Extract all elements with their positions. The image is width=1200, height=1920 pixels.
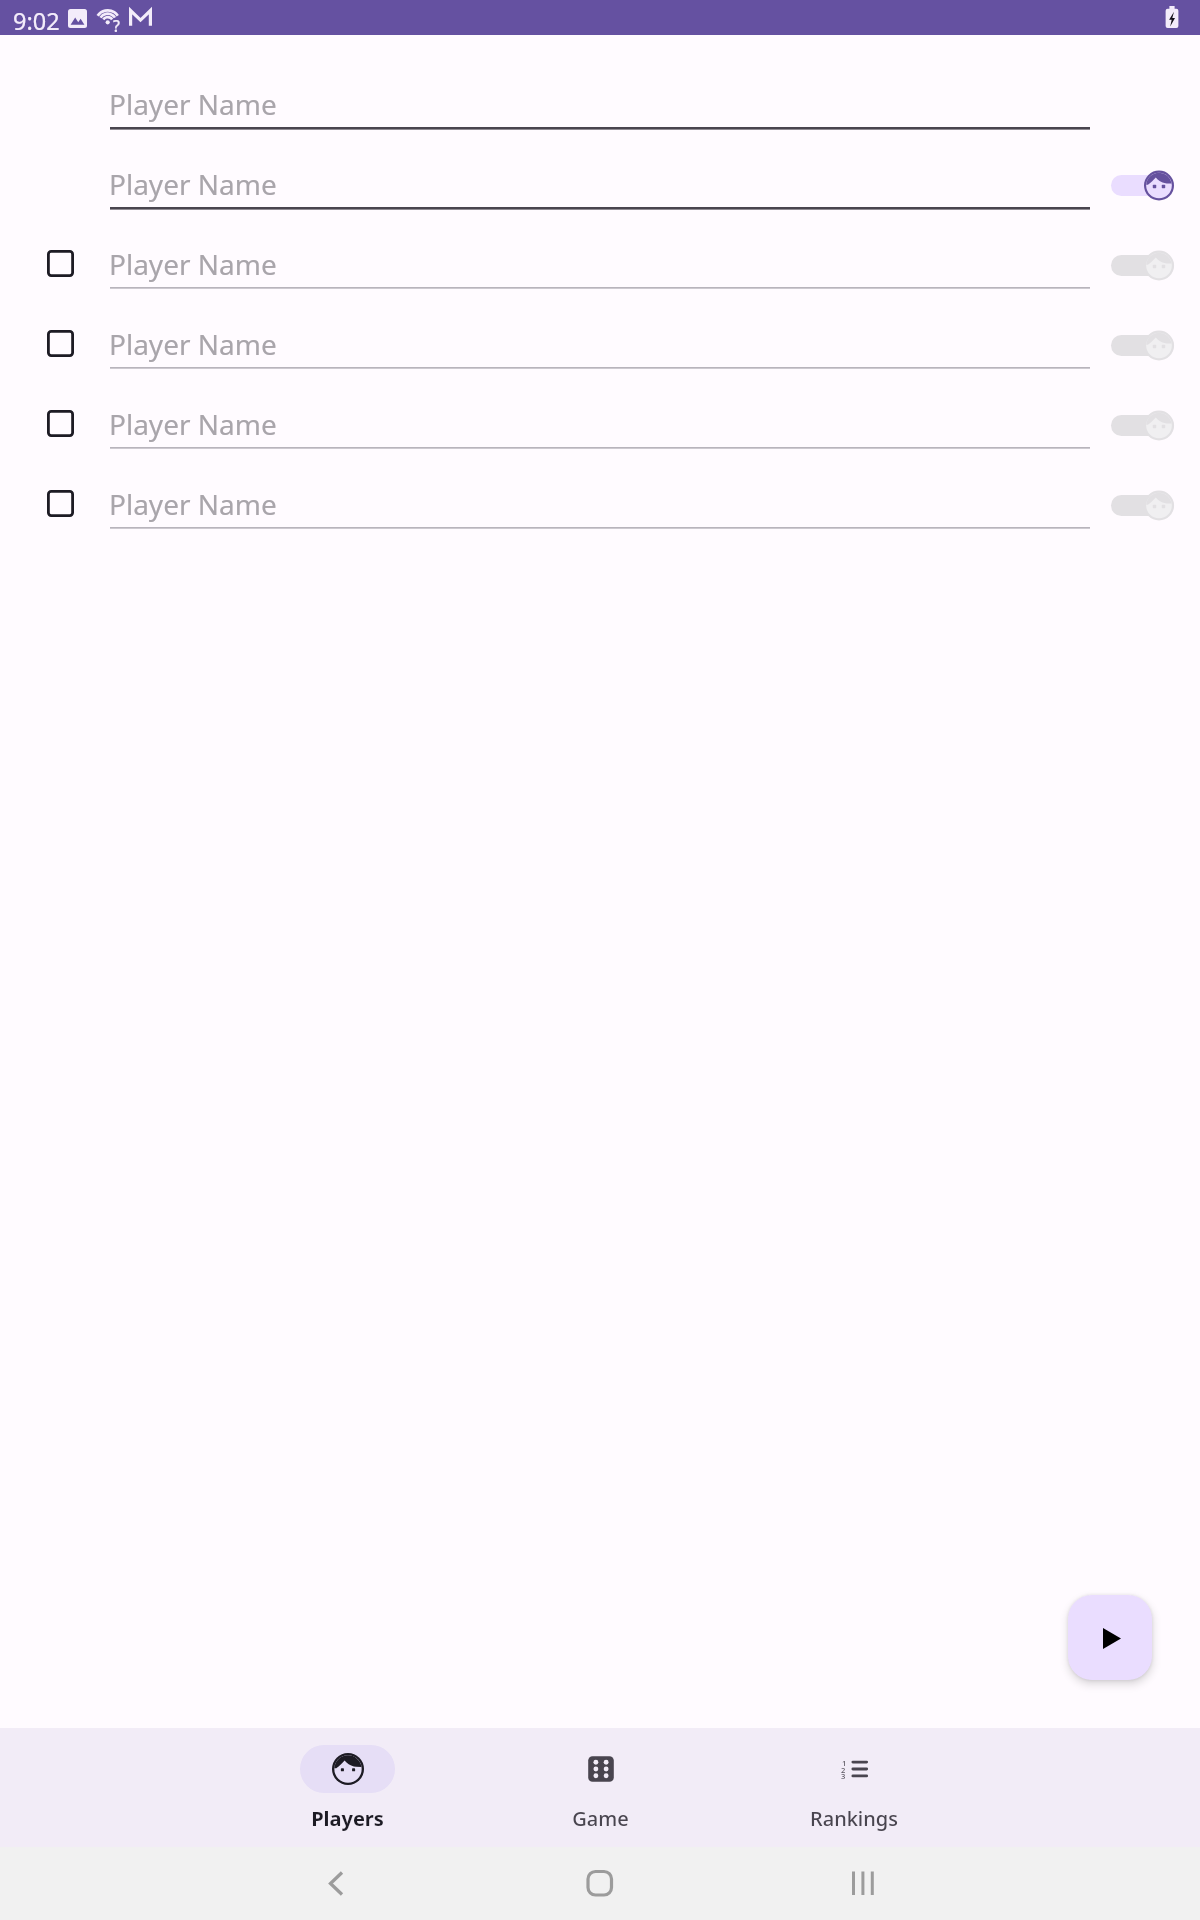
staticText: 1 <box>842 1758 847 1768</box>
staticText: Game <box>572 1805 629 1832</box>
staticText: Player Name <box>109 405 277 443</box>
button[interactable]: Player Name <box>110 312 1090 370</box>
button[interactable]: 1 <box>727 1728 980 1847</box>
button[interactable]: Toggle player active <box>1099 243 1187 289</box>
staticText: Player Name <box>109 245 277 283</box>
button[interactable]: Toggle player active <box>1099 323 1187 369</box>
button[interactable]: Select player <box>40 403 80 443</box>
staticText: Players <box>311 1805 384 1832</box>
button[interactable]: Toggle player active <box>1099 403 1187 449</box>
button[interactable]: Select player <box>40 243 80 283</box>
button[interactable]: Start game <box>1068 1595 1152 1680</box>
staticText: Player Name <box>109 165 277 203</box>
button[interactable]: Players <box>221 1728 474 1847</box>
staticText: 3 <box>841 1771 846 1781</box>
button[interactable]: Player Name <box>110 152 1090 210</box>
staticText: Player Name <box>109 85 277 123</box>
staticText: Player Name <box>109 325 277 363</box>
button[interactable]: Player Name <box>110 232 1090 290</box>
staticText: 2 <box>841 1765 846 1775</box>
button[interactable]: Select player <box>40 323 80 363</box>
button[interactable]: Select player <box>40 483 80 523</box>
staticText: Rankings <box>810 1805 898 1832</box>
button[interactable]: Player Name <box>110 392 1090 450</box>
button[interactable]: Player Name <box>110 472 1090 530</box>
button[interactable]: Player Name <box>110 72 1090 130</box>
button[interactable]: Game <box>474 1728 727 1847</box>
button[interactable]: Toggle player active <box>1099 163 1187 209</box>
staticText: Player Name <box>109 485 277 523</box>
staticText: ? <box>113 15 120 36</box>
staticText: 9:02 <box>13 5 60 37</box>
button[interactable]: Toggle player active <box>1099 483 1187 529</box>
